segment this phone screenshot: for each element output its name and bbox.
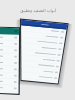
staticText: أبواب التصفية وتطبيق xyxy=(20,8,56,13)
